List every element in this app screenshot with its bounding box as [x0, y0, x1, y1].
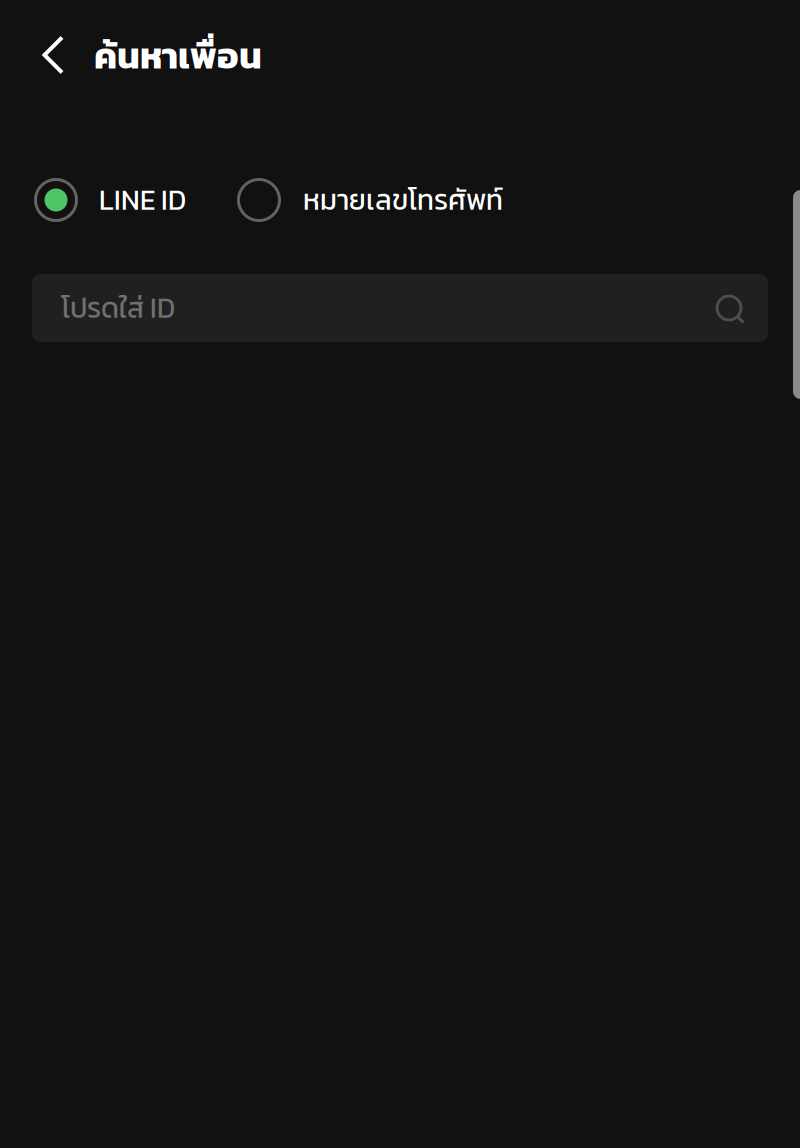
button[interactable]: Back [26, 26, 80, 84]
button[interactable]: LINE ID [34, 178, 186, 222]
staticText: โปรดใส่ ID [61, 287, 175, 329]
staticText: ค้นหาเพื่อน [94, 29, 262, 83]
button[interactable]: โปรดใส่ ID [32, 274, 768, 342]
staticText: หมายเลขโทรศัพท์ [303, 179, 503, 221]
staticText: LINE ID [99, 179, 186, 221]
button[interactable]: หมายเลขโทรศัพท์ [237, 178, 503, 222]
